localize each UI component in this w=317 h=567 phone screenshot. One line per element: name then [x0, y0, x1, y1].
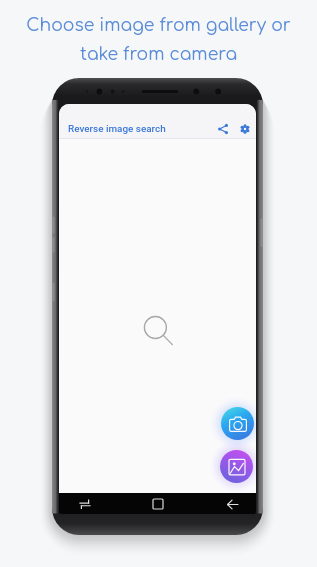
- button[interactable]: Choose image from gallery: [220, 450, 253, 483]
- button[interactable]: Share: [214, 120, 232, 138]
- staticText: Reverse image search: [68, 123, 166, 135]
- button[interactable]: Take photo with camera: [221, 407, 254, 440]
- button[interactable]: Reverse image search: [62, 120, 172, 137]
- staticText: Choose image from gallery or take from c…: [26, 16, 291, 64]
- button[interactable]: Recent apps: [75, 494, 95, 514]
- button[interactable]: Settings: [236, 120, 254, 138]
- button[interactable]: Home: [148, 494, 168, 514]
- button[interactable]: Back: [222, 494, 242, 514]
